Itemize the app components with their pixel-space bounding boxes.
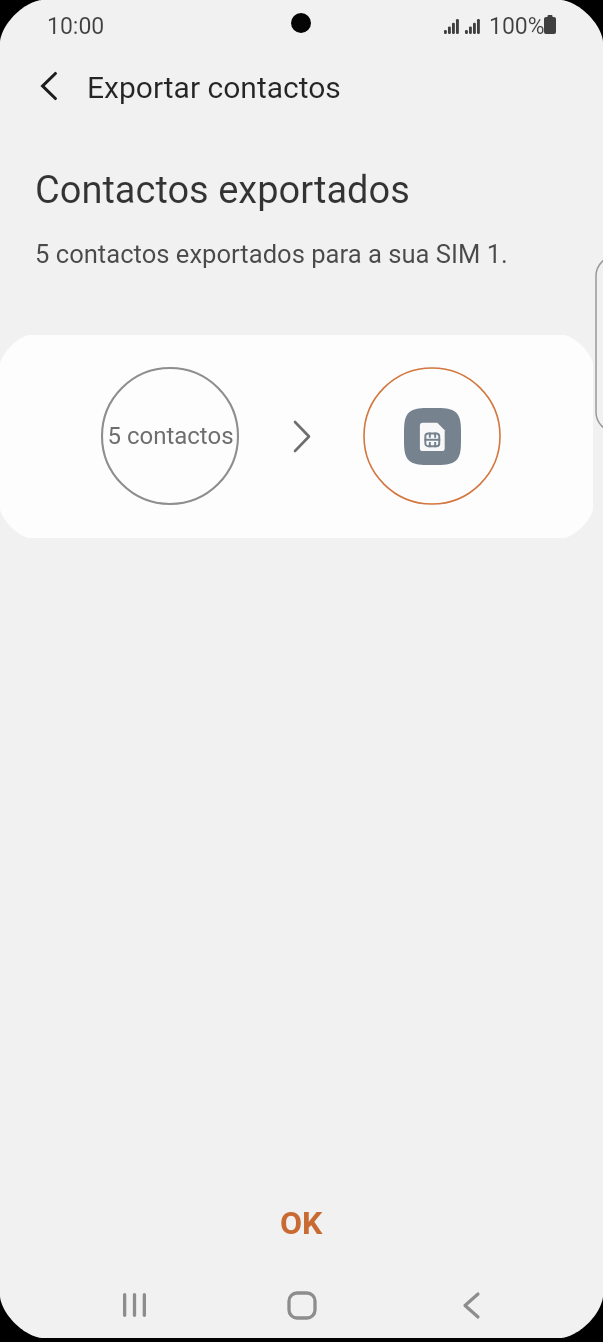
button[interactable]: Back	[431, 1265, 511, 1338]
button[interactable]: OK	[230, 1196, 373, 1250]
staticText: Exportar contactos	[87, 70, 341, 105]
staticText: Contactos exportados	[35, 168, 410, 213]
staticText: OK	[280, 1204, 323, 1242]
button[interactable]: Recent apps	[94, 1265, 174, 1338]
staticText: 5 contactos exportados para a sua SIM 1.	[35, 239, 508, 269]
button[interactable]: Back	[27, 64, 71, 108]
staticText: 100%	[489, 13, 545, 40]
button[interactable]: Home	[262, 1265, 342, 1338]
staticText: 10:00	[47, 13, 105, 40]
staticText: 5 contactos	[107, 422, 234, 450]
